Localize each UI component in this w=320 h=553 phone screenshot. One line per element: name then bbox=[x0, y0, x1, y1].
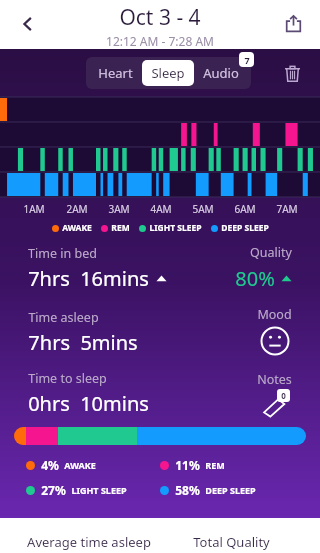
staticText: 5AM bbox=[192, 202, 214, 216]
button[interactable]: Sleep bbox=[142, 60, 194, 86]
staticText: AWAKE bbox=[62, 222, 92, 234]
staticText: Audio bbox=[203, 64, 239, 82]
staticText: 7hrs 5mins bbox=[28, 329, 138, 356]
staticText: LIGHT SLEEP bbox=[149, 222, 202, 234]
staticText: Mood bbox=[257, 306, 292, 323]
staticText: 7 bbox=[244, 54, 250, 66]
staticText: 11% bbox=[175, 457, 200, 473]
staticText: Time asleep bbox=[28, 309, 99, 326]
staticText: Time to sleep bbox=[28, 370, 107, 387]
staticText: 1AM bbox=[23, 202, 45, 216]
staticText: LIGHT SLEEP bbox=[71, 484, 127, 496]
staticText: DEEP SLEEP bbox=[205, 484, 256, 496]
staticText: Notes bbox=[257, 371, 292, 388]
staticText: Average time asleep bbox=[27, 533, 151, 551]
staticText: AWAKE bbox=[64, 459, 96, 471]
staticText: 4AM bbox=[150, 202, 172, 216]
button[interactable]: Heart bbox=[89, 60, 142, 86]
staticText: 2AM bbox=[66, 202, 88, 216]
staticText: Sleep bbox=[151, 64, 185, 82]
staticText: REM bbox=[205, 459, 225, 471]
button[interactable]: Audio bbox=[194, 60, 248, 86]
button[interactable]: Back bbox=[6, 2, 50, 46]
staticText: 58% bbox=[175, 482, 200, 498]
button[interactable]: Mood bbox=[260, 326, 290, 356]
staticText: 12:12 AM - 7:28 AM bbox=[106, 33, 214, 49]
staticText: Oct 3 - 4 bbox=[119, 3, 201, 32]
staticText: 80% bbox=[235, 265, 275, 292]
staticText: REM bbox=[111, 222, 130, 234]
staticText: 7AM bbox=[276, 202, 298, 216]
staticText: 4% bbox=[41, 457, 59, 473]
staticText: 7hrs 16mins bbox=[28, 265, 149, 292]
staticText: 0hrs 10mins bbox=[28, 390, 149, 417]
staticText: Time in bed bbox=[28, 245, 97, 262]
button[interactable]: Share bbox=[272, 2, 314, 44]
button[interactable]: Delete bbox=[272, 53, 312, 93]
staticText: Total Quality bbox=[193, 533, 270, 551]
button[interactable]: Notes bbox=[262, 391, 288, 417]
staticText: Quality bbox=[250, 244, 292, 261]
staticText: 27% bbox=[41, 482, 66, 498]
staticText: DEEP SLEEP bbox=[221, 222, 269, 234]
staticText: 0 bbox=[281, 390, 286, 401]
staticText: 6AM bbox=[234, 202, 256, 216]
staticText: 3AM bbox=[108, 202, 130, 216]
staticText: Heart bbox=[98, 64, 133, 82]
